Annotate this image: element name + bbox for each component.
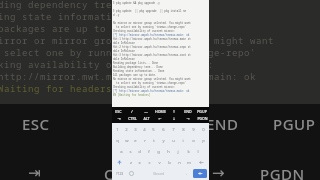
button[interactable]: 3	[131, 124, 140, 135]
button[interactable]: t	[149, 135, 158, 146]
button[interactable]: ALT	[139, 115, 153, 122]
button[interactable]: e	[131, 135, 140, 146]
staticText: Hit:1 http://mirror.umpch.hu/termux/term…	[113, 37, 191, 41]
staticText: p	[202, 138, 205, 144]
staticText: 0% [Waiting for headers]	[113, 93, 151, 97]
button[interactable]: s	[126, 146, 135, 157]
staticText: Hit:3 http://mirror.umpch.hu/termux/term…	[113, 53, 191, 57]
button[interactable]: →	[181, 115, 195, 122]
staticText: PGUP	[197, 109, 207, 114]
staticText: m	[187, 160, 191, 166]
staticText: 7	[172, 127, 175, 133]
button[interactable]: j	[173, 146, 183, 157]
button[interactable]: c	[144, 157, 154, 168]
button[interactable]: w	[122, 135, 131, 146]
button[interactable]: Emoji	[126, 168, 137, 179]
button[interactable]: ←	[153, 115, 167, 122]
button[interactable]: 1	[113, 124, 122, 135]
button[interactable]: z	[126, 157, 135, 168]
staticText: v	[158, 160, 161, 166]
button[interactable]: ↓	[167, 115, 181, 122]
staticText: /	[131, 109, 133, 114]
button[interactable]: /	[125, 108, 139, 115]
button[interactable]: 0	[198, 124, 208, 135]
staticText: 4	[143, 127, 146, 133]
staticText: 2	[125, 127, 128, 133]
button[interactable]: Symbols	[113, 168, 126, 179]
button[interactable]: Enter	[193, 169, 207, 178]
button[interactable]: ⇥	[112, 115, 125, 122]
staticText: Reading package lists... Done	[113, 61, 159, 65]
button[interactable]: 2	[122, 124, 131, 135]
staticText: t	[153, 138, 155, 144]
staticText: w	[125, 138, 129, 144]
button[interactable]: CTRL	[125, 115, 139, 122]
button[interactable]: PGDN	[195, 115, 209, 122]
button[interactable]: u	[168, 135, 178, 146]
button[interactable]: q	[113, 135, 122, 146]
staticText: l	[197, 149, 199, 155]
staticText: Checking availability of current mirror:	[0, 58, 215, 70]
button[interactable]: Backspace	[194, 157, 208, 168]
staticText: PGUP	[273, 114, 316, 134]
staticText: END	[206, 114, 239, 134]
staticText: d -y	[113, 13, 120, 17]
staticText: h	[167, 149, 170, 155]
staticText: —	[144, 109, 148, 114]
staticText: q	[116, 138, 119, 144]
button[interactable]: x	[135, 157, 144, 168]
staticText: ↓	[172, 117, 176, 121]
staticText: 1	[116, 127, 119, 133]
button[interactable]: Space	[138, 169, 180, 178]
button[interactable]: 6	[158, 124, 168, 135]
button[interactable]: ESC	[112, 108, 125, 115]
staticText: c	[148, 160, 151, 166]
button[interactable]: n	[174, 157, 184, 168]
button[interactable]: f	[144, 146, 153, 157]
staticText: Checking availability of current mirror:	[113, 29, 176, 33]
button[interactable]: HOME	[153, 108, 167, 115]
button[interactable]: l	[193, 146, 203, 157]
button[interactable]: b	[164, 157, 174, 168]
button[interactable]: v	[154, 157, 164, 168]
staticText: d	[138, 149, 141, 155]
staticText: Building dependency tree... Done	[113, 65, 163, 69]
button[interactable]: a	[117, 146, 126, 157]
button[interactable]: —	[139, 108, 153, 115]
button[interactable]: PGUP	[195, 108, 209, 115]
staticText: to select one by running 'termux-change-…	[113, 25, 187, 29]
staticText: able InRelease	[113, 49, 135, 53]
staticText: able InRelease	[113, 41, 135, 45]
button[interactable]: END	[181, 108, 195, 115]
button[interactable]: 5	[149, 124, 158, 135]
staticText: 0% [Waiting for headers]	[0, 82, 119, 94]
button[interactable]: k	[183, 146, 193, 157]
button[interactable]: Shift	[113, 157, 126, 168]
staticText: ESC	[115, 109, 122, 114]
staticText: to select one by running 'termux-change-…	[0, 46, 257, 58]
button[interactable]: ↑	[167, 108, 181, 115]
button[interactable]: y	[158, 135, 168, 146]
button[interactable]: h	[163, 146, 173, 157]
button[interactable]: d	[135, 146, 144, 157]
staticText: [*] http://mirror.mwt.me/termux/termux-m…	[0, 70, 257, 82]
button[interactable]: 7	[168, 124, 178, 135]
button[interactable]: 4	[140, 124, 149, 135]
staticText: CTRL	[104, 164, 142, 180]
button[interactable]: r	[140, 135, 149, 146]
staticText: ESC	[22, 114, 50, 134]
button[interactable]: g	[153, 146, 163, 157]
staticText: Hit:2 http://mirror.umpch.hu/termux/term…	[113, 45, 191, 49]
staticText: No mirror or mirror group selected. You …	[113, 77, 191, 81]
button[interactable]: p	[198, 135, 208, 146]
staticText: .	[186, 171, 188, 176]
staticText: ?123	[116, 171, 124, 176]
button[interactable]: 9	[188, 124, 198, 135]
button[interactable]: m	[184, 157, 194, 168]
staticText: ⇥	[117, 117, 121, 121]
button[interactable]: o	[188, 135, 198, 146]
button[interactable]: i	[178, 135, 188, 146]
staticText: END	[184, 109, 192, 114]
button[interactable]: 8	[178, 124, 188, 135]
